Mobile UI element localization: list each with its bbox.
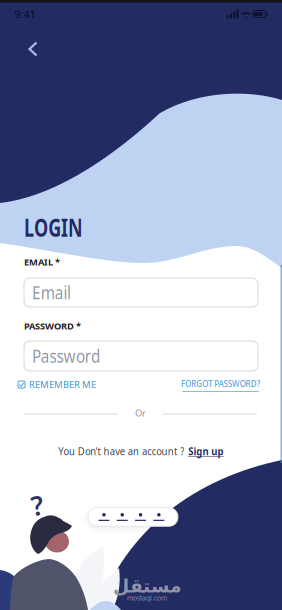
staticText: FORGOT PASSWORD?: [174, 377, 267, 390]
staticText: Sign up: [194, 444, 234, 458]
button[interactable]: Sign up: [194, 444, 234, 458]
staticText: Password: [33, 344, 111, 367]
button[interactable]: Email: [24, 278, 258, 307]
staticText: Email: [33, 281, 77, 304]
button[interactable]: FORGOT PASSWORD?: [174, 377, 267, 392]
staticText: You Don't have an account ?: [48, 444, 190, 458]
button[interactable]: REMEMBER ME: [18, 378, 96, 391]
staticText: REMEMBER ME: [29, 378, 96, 391]
staticText: LOGIN: [24, 210, 107, 244]
staticText: مستقل: [112, 575, 181, 597]
staticText: ?: [31, 487, 43, 523]
staticText: 9:41: [14, 7, 35, 21]
button[interactable]: Password: [24, 341, 258, 371]
staticText: Or: [135, 407, 146, 419]
staticText: EMAIL *: [24, 256, 60, 268]
staticText: mostaql.com: [127, 594, 167, 602]
button[interactable]: Back: [19, 32, 46, 65]
staticText: PASSWORD *: [24, 320, 81, 332]
